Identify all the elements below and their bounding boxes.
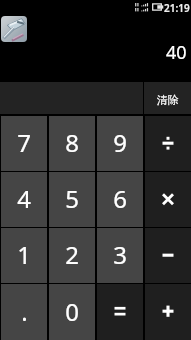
button[interactable]: 7	[1, 116, 47, 171]
button[interactable]: 8	[49, 116, 95, 171]
button[interactable]: 3	[97, 228, 143, 283]
staticText: 8	[65, 126, 79, 159]
staticText: 3	[113, 238, 127, 271]
staticText: 21:19	[164, 1, 190, 15]
button[interactable]: 0	[49, 284, 95, 340]
staticText: 0	[65, 295, 79, 328]
button[interactable]: Add	[145, 284, 191, 340]
staticText: .	[21, 295, 28, 328]
staticText: 5	[65, 182, 79, 215]
staticText: 1	[17, 238, 31, 271]
other: Calculator app icon	[1, 16, 27, 42]
button[interactable]: 9	[97, 116, 143, 171]
staticText: 7	[17, 126, 31, 159]
button[interactable]: 5	[49, 172, 95, 227]
staticText: 2	[65, 238, 79, 271]
button[interactable]: 2	[49, 228, 95, 283]
staticText: 6	[113, 182, 127, 215]
button[interactable]: 6	[97, 172, 143, 227]
button[interactable]: 4	[1, 172, 47, 227]
other: Mobile signal	[135, 2, 151, 12]
button[interactable]: 1	[1, 228, 47, 283]
staticText: 40	[166, 40, 187, 65]
button[interactable]: Multiply	[145, 172, 191, 227]
button[interactable]: Equals	[97, 284, 143, 340]
staticText: 4	[17, 182, 31, 215]
other: Battery	[152, 3, 164, 11]
button[interactable]: .	[1, 284, 47, 340]
button[interactable]: Divide	[145, 116, 191, 171]
button[interactable]: Subtract	[145, 228, 191, 283]
staticText: 清除	[157, 93, 179, 107]
button[interactable]: 清除	[144, 82, 191, 114]
staticText: 9	[113, 126, 127, 159]
